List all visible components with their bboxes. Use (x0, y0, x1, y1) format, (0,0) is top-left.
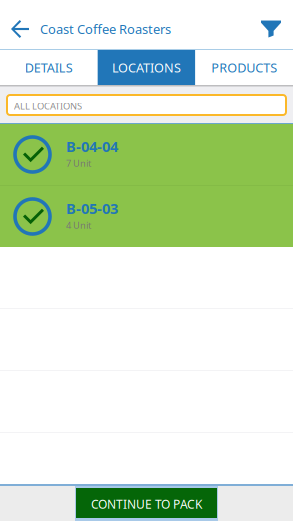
staticText: Coast Coffee Roasters (40, 20, 171, 38)
button[interactable]: B-04-04 (0, 124, 293, 185)
staticText: LOCATIONS (112, 59, 181, 76)
staticText: DETAILS (25, 59, 73, 76)
button[interactable]: CONTINUE TO PACK (75, 486, 218, 521)
staticText: B-05-03 (66, 199, 118, 218)
staticText: ALL LOCATIONS (14, 100, 82, 112)
staticText: 7 Unit (66, 157, 91, 169)
staticText: CONTINUE TO PACK (91, 496, 202, 512)
button[interactable]: LOCATIONS (98, 50, 195, 85)
button[interactable]: Filter (255, 9, 293, 49)
button[interactable]: DETAILS (0, 50, 98, 85)
staticText: B-04-04 (66, 137, 118, 156)
button[interactable]: B-05-03 (0, 186, 293, 247)
staticText: 4 Unit (66, 219, 91, 231)
staticText: PRODUCTS (211, 59, 277, 76)
button[interactable]: PRODUCTS (195, 50, 293, 85)
button[interactable]: Back (0, 9, 40, 49)
